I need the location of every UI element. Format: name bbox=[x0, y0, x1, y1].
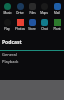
staticText: Play bbox=[4, 27, 10, 31]
staticText: Photos bbox=[15, 27, 25, 31]
button[interactable]: Music bbox=[2, 3, 12, 15]
staticText: Music bbox=[3, 11, 12, 15]
button[interactable]: Store bbox=[27, 19, 37, 31]
staticText: Store bbox=[28, 27, 36, 31]
staticText: Plant bbox=[53, 27, 61, 31]
staticText: Maps bbox=[40, 11, 48, 15]
button[interactable]: Files bbox=[27, 3, 37, 15]
staticText: Drive bbox=[16, 11, 24, 15]
staticText: Podcast bbox=[2, 39, 22, 46]
button[interactable]: Photos bbox=[15, 19, 25, 31]
button[interactable]: Play bbox=[2, 19, 12, 31]
staticText: Playback bbox=[2, 59, 19, 64]
staticText: Chat bbox=[41, 27, 48, 31]
button[interactable]: Chat bbox=[39, 19, 49, 31]
staticText: General bbox=[2, 52, 17, 57]
button[interactable]: Drive bbox=[15, 3, 25, 15]
staticText: Mail bbox=[54, 11, 60, 15]
button[interactable]: Plant bbox=[52, 19, 62, 31]
button[interactable]: Mail bbox=[52, 3, 62, 15]
button[interactable]: Maps bbox=[39, 3, 49, 15]
staticText: Files bbox=[29, 11, 36, 15]
